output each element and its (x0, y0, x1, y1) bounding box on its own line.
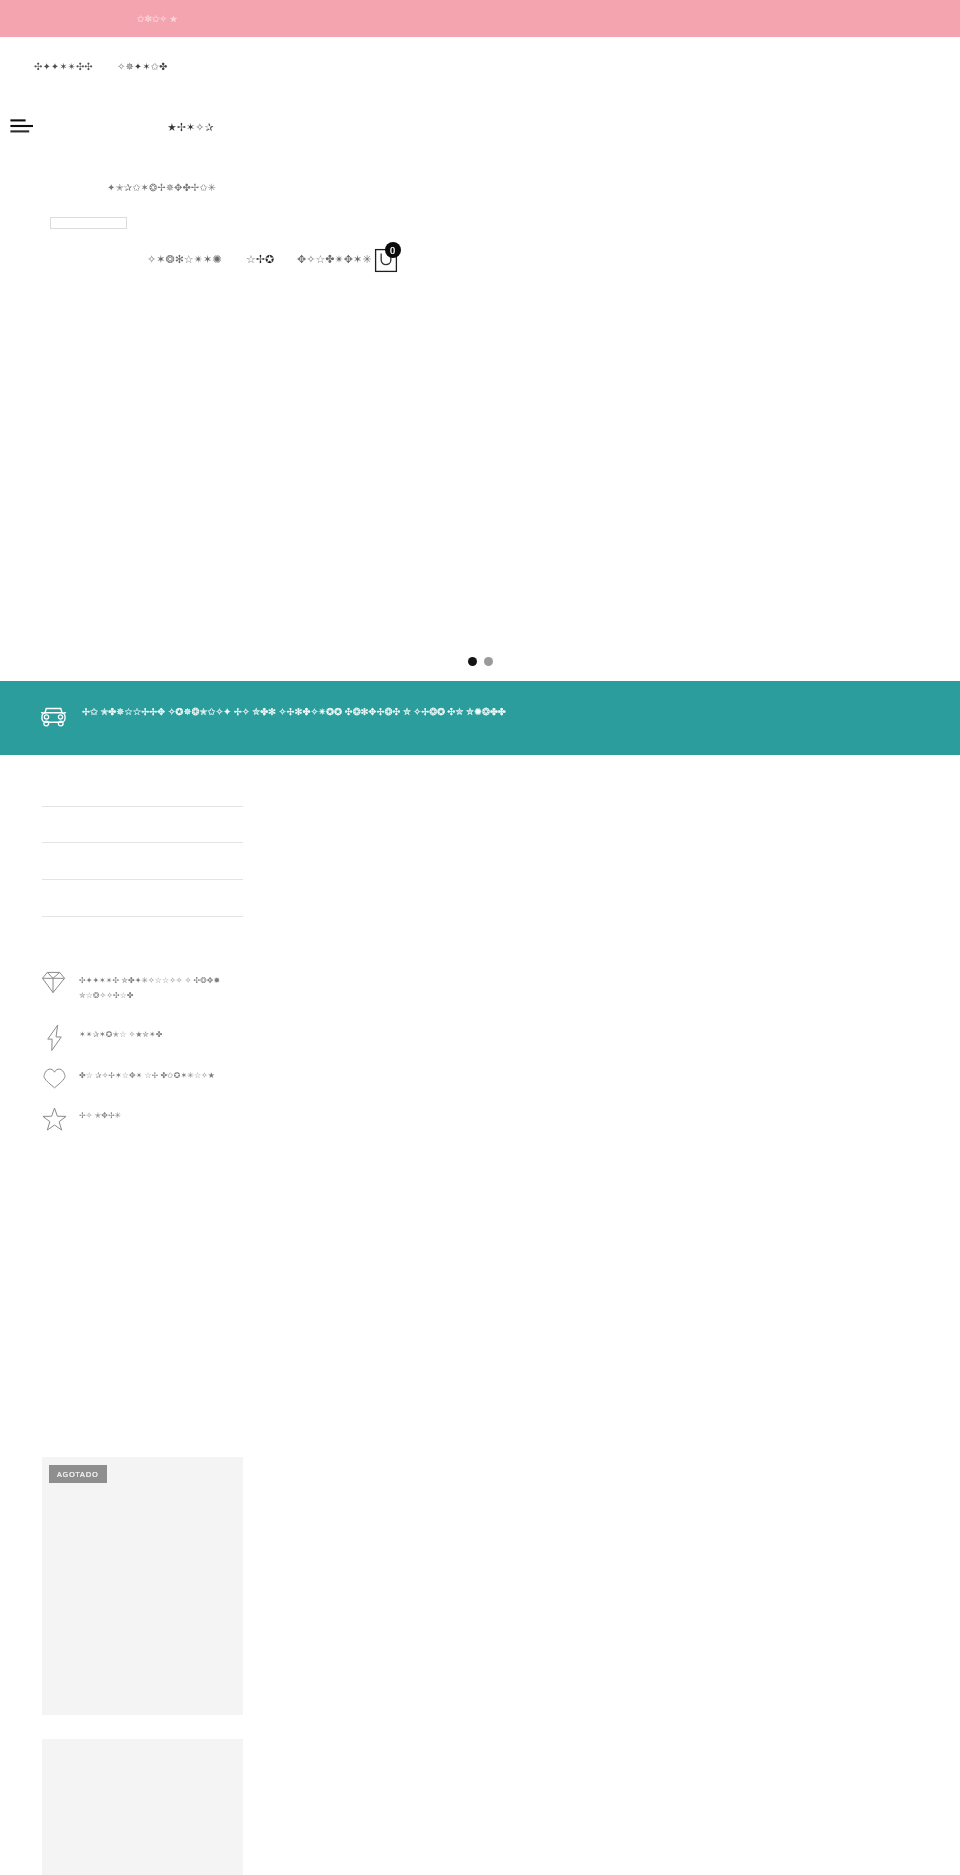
button[interactable]: Slide 2 (484, 657, 493, 666)
button[interactable]: ✥✧☆✤✴✥✶✳ (297, 253, 372, 266)
button[interactable]: Heart (44, 1068, 65, 1088)
staticText: ✤☆ ✰✧✢✶☆✥✴ ☆✢ ✤✩✪✶✳☆✧★ (79, 1069, 215, 1080)
button[interactable]: ✣✦✦✶✴✣✣ (34, 61, 93, 73)
button[interactable]: ✤☆ ✰✧✢✶☆✥✴ ☆✢ ✤✩✪✶✳☆✧★ (79, 1069, 215, 1080)
button[interactable] (42, 890, 243, 917)
button[interactable]: Open menu (2, 110, 42, 144)
button[interactable]: Star (43, 1108, 66, 1130)
button[interactable]: Slide 1 (468, 657, 477, 666)
button[interactable]: Shopping bag (371, 238, 405, 272)
staticText: ★✢✶✧✰ (167, 121, 214, 134)
button[interactable]: AGOTADO (42, 1457, 243, 1715)
button[interactable]: ✶✴✰✶✪✭☆ ✧★✮✴✤ (79, 1028, 163, 1039)
staticText: ✣✦✦✶✴✣✣ (34, 61, 93, 73)
staticText: 0 (390, 244, 396, 256)
button[interactable]: ✧✵✦✶✩✤ (117, 61, 168, 73)
staticText: ✢✩ ✭✤✵☆☆✢✢✥ ✧✪✵❂✭✩✧✦ ✢✧ ✮✤✻ ✧✢✻✤✧✴✪✪ ✣❂✻… (82, 705, 506, 718)
button[interactable]: ★✢✶✧✰ (167, 121, 214, 134)
button[interactable]: ✢✧ ✭✥✢✳ (79, 1109, 122, 1120)
button[interactable] (42, 853, 243, 880)
button[interactable]: ✣✦✦✶✴✣ ✮✤✦✳✧☆☆✧✧ ✧ ✣❂✥✹ ✮☆❂✧✧✣☆✤ (79, 974, 221, 1000)
staticText: ✥✧☆✤✴✥✶✳ (297, 253, 372, 266)
button[interactable] (42, 780, 243, 807)
button[interactable]: Diamond (42, 972, 65, 993)
button[interactable]: Bolt (47, 1024, 62, 1051)
button[interactable]: ✧✶❂✻☆✴✶✺ (147, 253, 222, 266)
button[interactable]: Search (50, 217, 127, 229)
staticText: ✧✵✦✶✩✤ (117, 61, 168, 73)
button[interactable] (42, 816, 243, 843)
button[interactable]: ☆✢✪ (246, 253, 275, 266)
staticText: ✦✭✰✩✶❂✢✵✥✤✢✩✳ (107, 182, 216, 194)
staticText: ✶✴✰✶✪✭☆ ✧★✮✴✤ (79, 1028, 163, 1039)
staticText: ✣✦✦✶✴✣ ✮✤✦✳✧☆☆✧✧ ✧ ✣❂✥✹ ✮☆❂✧✧✣☆✤ (79, 974, 221, 1000)
staticText: ✢✧ ✭✥✢✳ (79, 1109, 122, 1120)
staticText: ☆✢✪ (246, 253, 275, 266)
staticText: AGOTADO (57, 1469, 99, 1479)
staticText: ✩✻✩✧ ★ (137, 12, 178, 24)
staticText: ✧✶❂✻☆✴✶✺ (147, 253, 222, 266)
